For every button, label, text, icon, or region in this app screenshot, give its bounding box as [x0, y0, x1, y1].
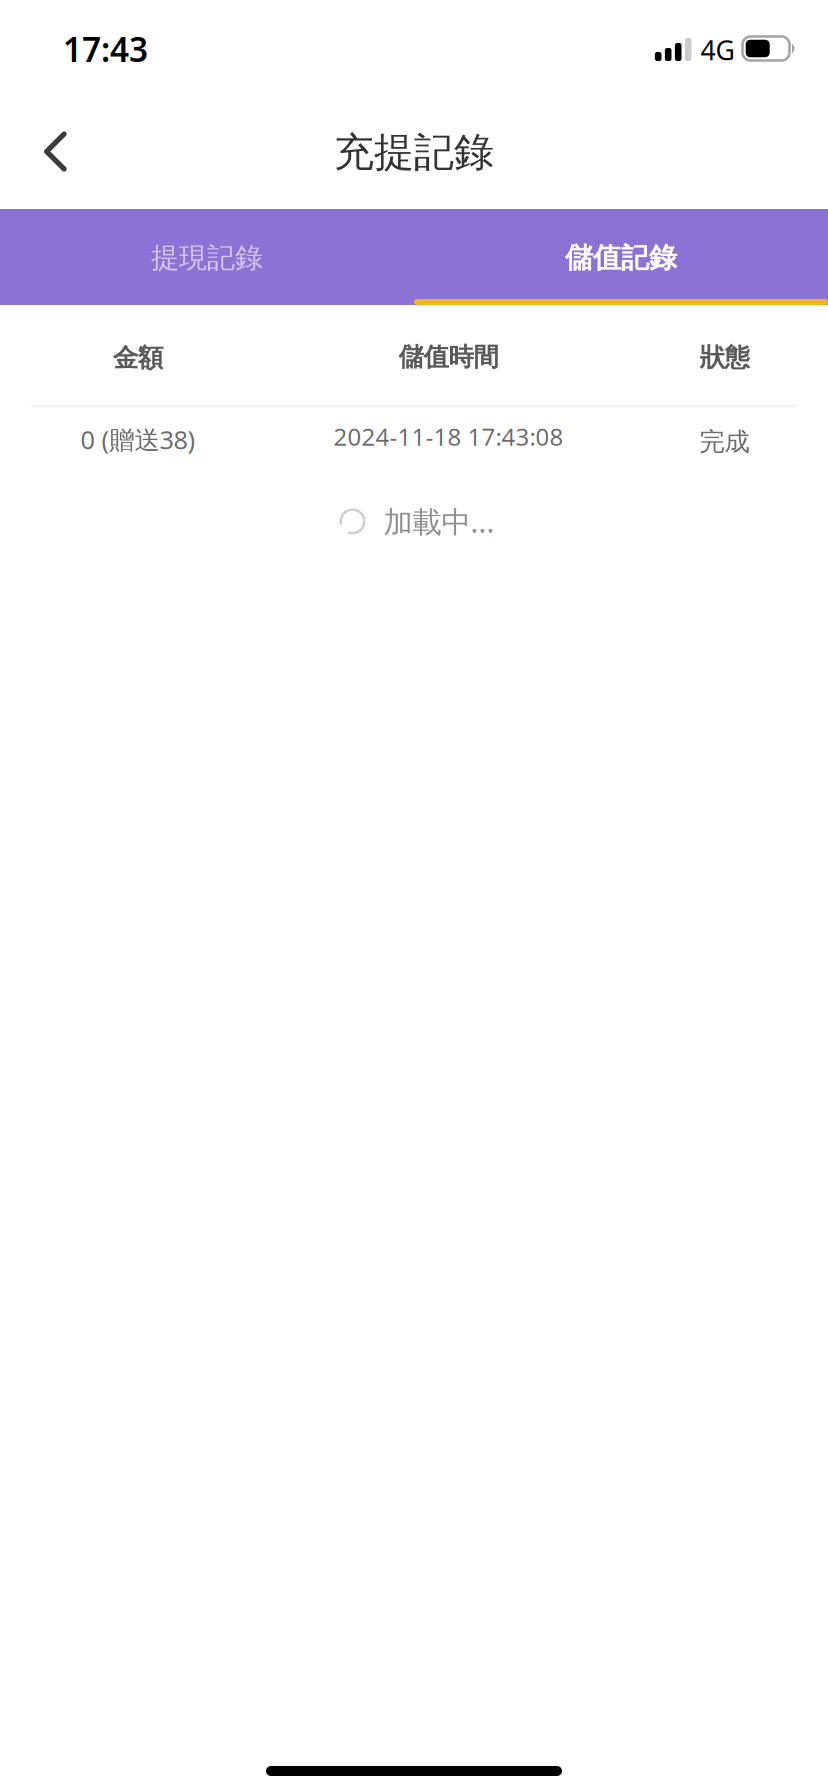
staticText: 金額: [113, 342, 163, 373]
staticText: 狀態: [699, 342, 749, 373]
staticText: 0 (贈送38): [80, 423, 195, 456]
staticText: 提現記錄: [151, 241, 263, 275]
button[interactable]: Back: [0, 107, 99, 196]
staticText: 17:43: [63, 27, 148, 71]
staticText: 2024-11-18 17:43:08: [333, 420, 563, 452]
button[interactable]: 提現記錄: [0, 209, 414, 299]
staticText: 加載中...: [383, 502, 494, 541]
staticText: 充提記錄: [334, 128, 494, 177]
button[interactable]: 儲值記錄: [414, 209, 828, 299]
staticText: 4G: [700, 32, 734, 68]
staticText: 儲值記錄: [565, 241, 677, 275]
staticText: 完成: [699, 426, 749, 457]
staticText: 儲值時間: [398, 341, 498, 372]
